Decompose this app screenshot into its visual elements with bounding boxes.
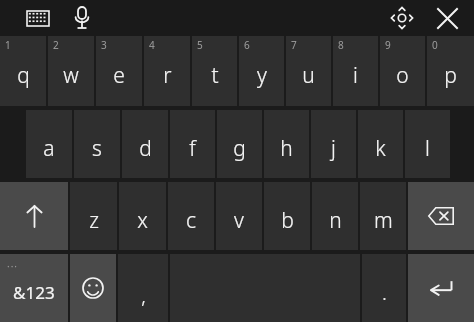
staticText: 8: [338, 38, 344, 52]
button[interactable]: 1: [0, 36, 46, 106]
button[interactable]: 3: [96, 36, 142, 106]
staticText: ,: [141, 282, 146, 309]
staticText: &123: [13, 281, 55, 304]
staticText: 4: [149, 38, 155, 52]
staticText: l: [425, 134, 430, 163]
staticText: m: [374, 206, 393, 235]
staticText: q: [17, 61, 30, 90]
button[interactable]: x: [119, 182, 166, 250]
button[interactable]: f: [170, 110, 215, 178]
staticText: n: [329, 206, 342, 235]
button[interactable]: 6: [239, 36, 284, 106]
staticText: i: [353, 61, 358, 90]
button[interactable]: .: [362, 254, 406, 322]
staticText: 0: [432, 38, 438, 52]
button[interactable]: 2: [48, 36, 94, 106]
staticText: r: [163, 61, 172, 90]
staticText: f: [189, 134, 196, 163]
staticText: ···: [7, 259, 19, 273]
staticText: k: [375, 134, 386, 163]
button[interactable]: 5: [192, 36, 237, 106]
button[interactable]: Enter: [408, 254, 474, 322]
button[interactable]: k: [358, 110, 403, 178]
button[interactable]: ···: [0, 254, 68, 322]
staticText: z: [89, 206, 99, 235]
button[interactable]: l: [405, 110, 450, 178]
staticText: x: [137, 206, 148, 235]
staticText: a: [43, 134, 55, 163]
button[interactable]: g: [217, 110, 262, 178]
staticText: c: [186, 206, 196, 235]
button[interactable]: Emoji: [70, 254, 116, 322]
staticText: p: [444, 61, 457, 90]
staticText: u: [302, 61, 315, 90]
button[interactable]: 8: [333, 36, 378, 106]
staticText: t: [211, 61, 219, 90]
button[interactable]: j: [311, 110, 356, 178]
staticText: 9: [385, 38, 391, 52]
staticText: 3: [101, 38, 107, 52]
button[interactable]: n: [312, 182, 358, 250]
staticText: d: [139, 134, 152, 163]
button[interactable]: Shift: [0, 182, 68, 250]
staticText: h: [280, 134, 293, 163]
button[interactable]: ,: [118, 254, 168, 322]
button[interactable]: Keyboard layout: [25, 5, 51, 31]
button[interactable]: m: [360, 182, 406, 250]
staticText: j: [331, 134, 336, 163]
staticText: b: [281, 206, 294, 235]
button[interactable]: 9: [380, 36, 425, 106]
staticText: y: [257, 61, 267, 90]
button[interactable]: d: [122, 110, 168, 178]
staticText: v: [234, 206, 244, 235]
staticText: 7: [291, 38, 297, 52]
staticText: 1: [5, 38, 11, 52]
staticText: .: [382, 279, 387, 306]
button[interactable]: 4: [144, 36, 190, 106]
button[interactable]: c: [168, 182, 214, 250]
button[interactable]: v: [216, 182, 262, 250]
button[interactable]: 7: [286, 36, 331, 106]
staticText: g: [233, 134, 246, 163]
staticText: w: [63, 61, 79, 90]
button[interactable]: z: [70, 182, 117, 250]
button[interactable]: a: [26, 110, 72, 178]
button[interactable]: Move keyboard: [387, 3, 417, 33]
button[interactable]: s: [74, 110, 120, 178]
button[interactable]: Close keyboard: [432, 3, 462, 33]
staticText: o: [396, 61, 409, 90]
staticText: 5: [197, 38, 203, 52]
staticText: 2: [53, 38, 59, 52]
staticText: e: [113, 61, 125, 90]
button[interactable]: 0: [427, 36, 474, 106]
staticText: 6: [244, 38, 250, 52]
button[interactable]: b: [264, 182, 310, 250]
staticText: s: [92, 134, 102, 163]
button[interactable]: Backspace: [408, 182, 474, 250]
button[interactable]: Voice input: [67, 3, 97, 33]
button[interactable]: h: [264, 110, 309, 178]
